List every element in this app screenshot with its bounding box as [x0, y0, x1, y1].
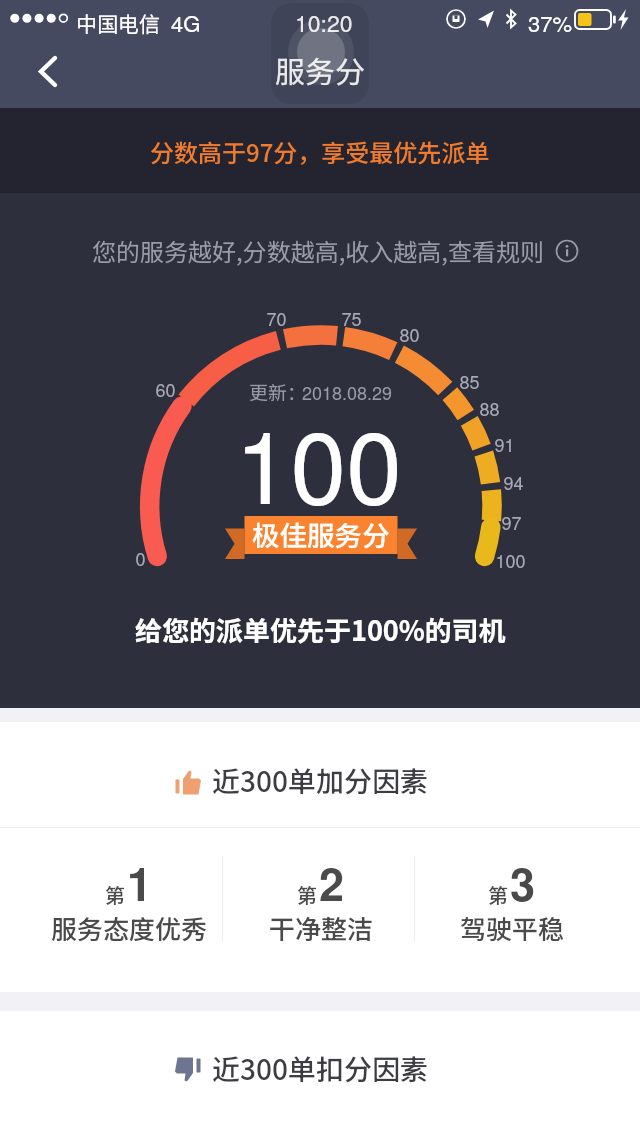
staticText: 88 [479, 395, 500, 421]
staticText: 给您的派单优先于100%的司机 [135, 610, 506, 649]
staticText: 第 [297, 880, 317, 909]
staticText: 2018.08.29 [302, 379, 393, 405]
staticText: 极佳服务分 [252, 514, 390, 554]
button[interactable]: 近300单加分因素 [0, 722, 640, 827]
staticText: 91 [494, 431, 515, 457]
button[interactable]: 第 [225, 828, 417, 992]
staticText: 服务分 [275, 48, 365, 91]
staticText: 服务态度优秀 [51, 909, 208, 947]
staticText: 100 [235, 389, 402, 532]
staticText: 2 [319, 850, 345, 914]
staticText: 分数高于97分，享受最优先派单 [150, 134, 490, 169]
staticText: 0 [135, 545, 146, 571]
staticText: 100 [495, 547, 526, 573]
button[interactable]: 第 [33, 828, 225, 992]
staticText: 1 [127, 850, 153, 914]
staticText: 4G [171, 7, 201, 39]
staticText: 60 [155, 376, 176, 402]
button[interactable]: 第 [416, 828, 608, 992]
staticText: 97 [501, 509, 522, 535]
staticText: 第 [105, 880, 125, 909]
staticText: 3 [510, 850, 536, 914]
staticText: 10:20 [295, 6, 353, 39]
staticText: 70 [266, 305, 287, 331]
staticText: 80 [399, 321, 420, 347]
button[interactable]: Rules [555, 239, 579, 263]
staticText: 37% [528, 7, 573, 39]
staticText: 驾驶平稳 [460, 909, 565, 947]
button[interactable]: 近300单扣分因素 [0, 1011, 640, 1138]
staticText: 85 [459, 368, 480, 394]
staticText: 75 [341, 305, 362, 331]
staticText: 更新： [249, 378, 307, 406]
button[interactable]: Back [10, 38, 74, 102]
staticText: 干净整洁 [269, 909, 374, 947]
staticText: 94 [503, 469, 524, 495]
staticText: 第 [488, 880, 508, 909]
staticText: 中国电信 [76, 8, 160, 38]
staticText: 近300单加分因素 [212, 760, 428, 801]
staticText: 您的服务越好,分数越高,收入越高,查看规则 [92, 233, 545, 268]
staticText: 近300单扣分因素 [212, 1048, 428, 1089]
